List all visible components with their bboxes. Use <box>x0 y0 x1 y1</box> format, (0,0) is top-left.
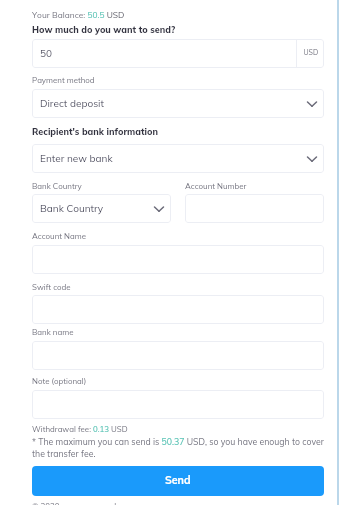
button[interactable]: Bank country <box>32 194 171 223</box>
button[interactable]: Payment method <box>32 89 324 118</box>
button[interactable]: Send <box>32 466 324 496</box>
button[interactable]: Account number <box>185 194 324 223</box>
button[interactable]: Bank name <box>32 341 324 370</box>
button[interactable]: Account name <box>32 245 324 274</box>
button[interactable]: Select bank <box>32 144 324 173</box>
button[interactable]: Amount to send <box>32 39 324 68</box>
button[interactable]: Swift code <box>32 295 324 324</box>
button[interactable]: Note <box>32 390 324 419</box>
